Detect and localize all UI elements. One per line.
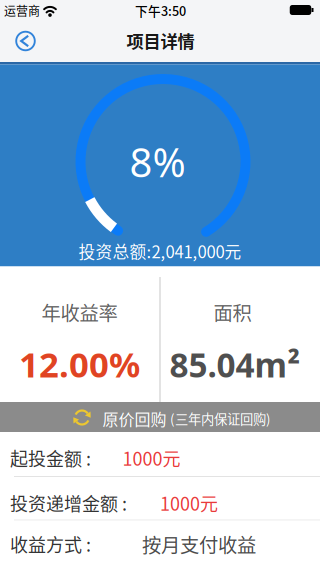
staticText: 下午3:50	[135, 1, 186, 20]
staticText: 8%	[129, 135, 185, 188]
staticText: 85.04m²	[169, 342, 300, 387]
staticText: 1000元	[160, 490, 218, 516]
staticText: 12.00%	[19, 341, 140, 387]
staticText: (三年内保证回购)	[170, 409, 271, 428]
staticText: 项目详情	[126, 28, 194, 53]
staticText: 按月支付收益	[142, 530, 256, 558]
staticText: 投资递增金额 :	[10, 490, 127, 516]
button[interactable]: 原价回购	[0, 402, 320, 432]
staticText: 面积	[213, 298, 251, 326]
staticText: 投资总额:2,041,000元	[78, 239, 241, 263]
staticText: 原价回购	[102, 407, 166, 430]
staticText: 1000元	[122, 445, 180, 471]
staticText: 运营商	[4, 2, 40, 19]
staticText: 年收益率	[41, 298, 117, 326]
button[interactable]: Back	[7, 20, 43, 62]
staticText: 起投金额 :	[10, 445, 91, 471]
staticText: 收益方式 :	[10, 531, 91, 557]
